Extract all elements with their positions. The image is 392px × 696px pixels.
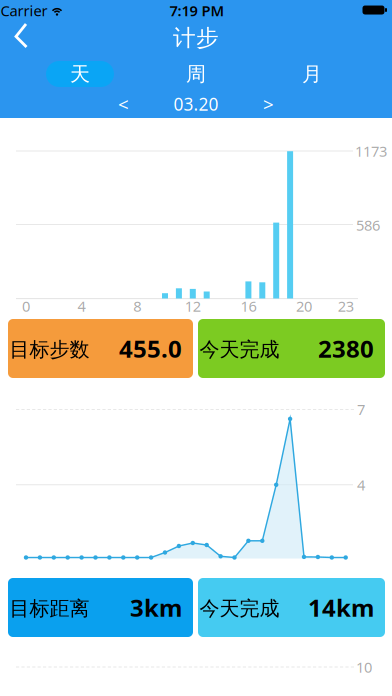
staticText: 目标距离 [9,596,89,621]
staticText: 12 [185,296,201,316]
staticText: 1173 [355,141,387,161]
staticText: 10 [356,657,372,677]
staticText: 4 [357,475,365,494]
staticText: 16 [240,296,256,316]
staticText: 23 [338,296,354,316]
staticText: 4 [78,296,86,316]
staticText: 586 [356,215,380,235]
button[interactable]: Previous day [108,92,138,116]
staticText: 455.0 [119,333,182,364]
staticText: 目标步数 [9,337,89,362]
button[interactable]: 周 [138,59,254,89]
button[interactable]: 月 [254,59,370,89]
staticText: > [263,92,274,116]
staticText: 0 [22,296,30,316]
staticText: < [118,92,129,116]
button[interactable]: Next day [253,92,283,116]
staticText: 20 [296,296,312,316]
button[interactable]: 天 [22,59,138,89]
staticText: 2380 [318,333,374,364]
staticText: 7 [357,400,365,419]
staticText: 8 [133,296,141,316]
staticText: 7:19 PM [169,1,224,20]
staticText: 14km [308,592,374,623]
staticText: 周 [186,62,206,86]
staticText: 3km [130,592,182,623]
staticText: 月 [302,62,322,86]
staticText: 计步 [173,24,219,52]
staticText: Carrier [0,1,47,20]
staticText: 今天完成 [199,337,279,362]
button[interactable]: Back [0,18,40,56]
staticText: 今天完成 [199,596,279,621]
staticText: 03.20 [173,92,218,115]
staticText: 天 [70,62,90,86]
